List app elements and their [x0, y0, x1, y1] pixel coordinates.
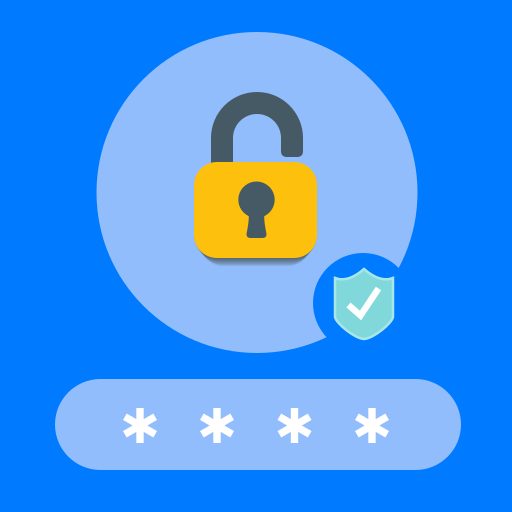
button[interactable]: Password	[0, 0, 512, 512]
